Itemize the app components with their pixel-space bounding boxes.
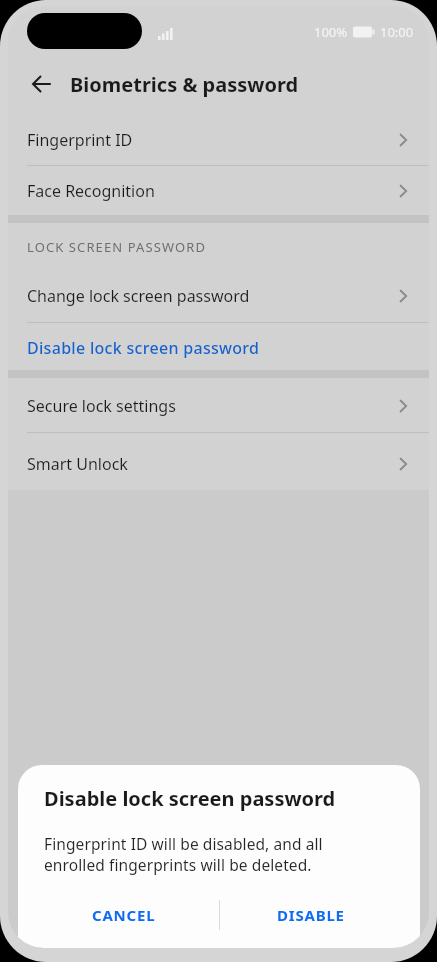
button[interactable]: Disable lock screen password	[8, 322, 429, 374]
staticText: Face Recognition	[27, 180, 155, 202]
staticText: Fingerprint ID	[27, 129, 133, 151]
staticText: Fingerprint ID will be disabled, and all…	[44, 833, 323, 875]
button[interactable]: DISABLE	[241, 895, 381, 935]
button[interactable]: Secure lock settings	[8, 380, 429, 432]
staticText: Disable lock screen password	[27, 337, 260, 359]
staticText: 100%	[314, 23, 348, 41]
button[interactable]: Face Recognition	[8, 165, 429, 217]
staticText: Smart Unlock	[27, 453, 128, 475]
staticText: Secure lock settings	[27, 395, 176, 417]
button[interactable]: Smart Unlock	[8, 438, 429, 490]
staticText: Biometrics & password	[70, 71, 299, 98]
button[interactable]: CANCEL	[54, 895, 194, 935]
staticText: 10:00	[380, 23, 414, 41]
staticText: Disable lock screen password	[44, 785, 336, 812]
staticText: DISABLE	[277, 905, 345, 925]
staticText: CANCEL	[92, 905, 156, 925]
button[interactable]: Change lock screen password	[8, 270, 429, 322]
staticText: Change lock screen password	[27, 285, 250, 307]
staticText: LOCK SCREEN PASSWORD	[27, 238, 206, 256]
button[interactable]	[24, 67, 58, 101]
button[interactable]: Fingerprint ID	[8, 114, 429, 166]
